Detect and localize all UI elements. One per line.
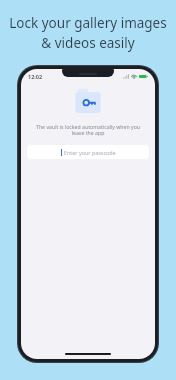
staticText: 12:02: [28, 73, 43, 80]
button[interactable]: Enter your passcode: [27, 145, 149, 159]
staticText: Enter your passcode: [64, 149, 116, 156]
staticText: Lock your gallery images: [9, 14, 167, 32]
staticText: & videos easily: [41, 34, 135, 52]
staticText: The vault is locked automatically when y…: [34, 123, 142, 137]
